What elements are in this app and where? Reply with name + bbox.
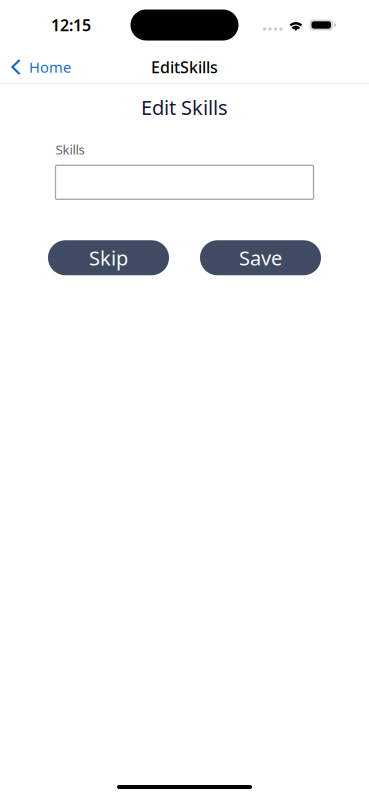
staticText: Home (29, 57, 71, 77)
button[interactable]: Skills (55, 165, 313, 199)
staticText: Save (239, 244, 282, 271)
button[interactable]: Skip (48, 240, 169, 275)
button[interactable]: Home (0, 50, 81, 83)
staticText: Skills (55, 141, 84, 158)
button[interactable]: Save (200, 240, 321, 275)
staticText: Skip (89, 244, 128, 271)
staticText: 12:15 (51, 14, 91, 36)
staticText: Edit Skills (141, 94, 228, 121)
staticText: EditSkills (151, 56, 218, 78)
